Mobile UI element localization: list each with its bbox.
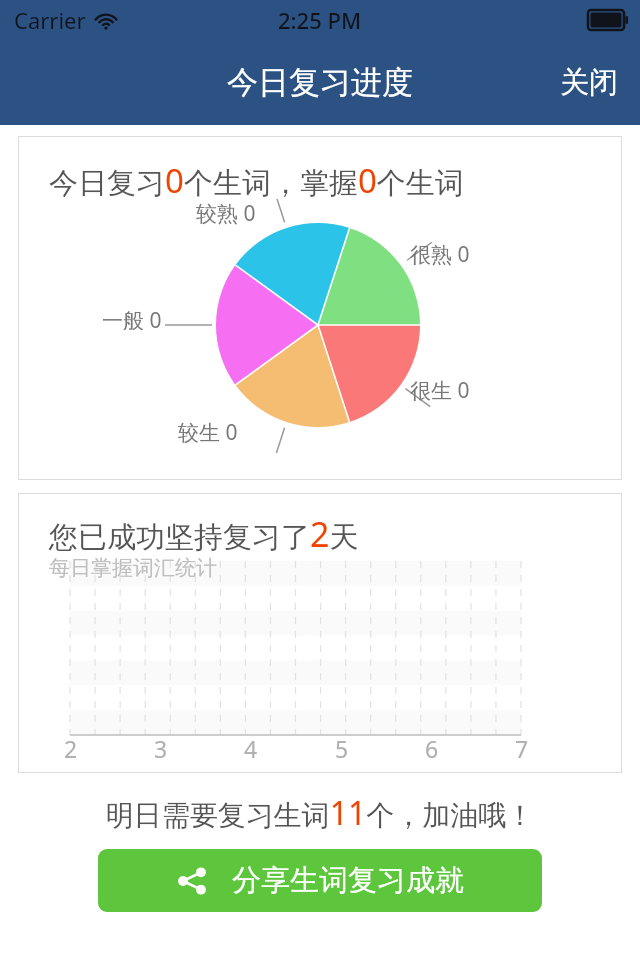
staticText: 很生 0 bbox=[410, 376, 470, 405]
button[interactable]: 您已成功坚持复习了2天 bbox=[18, 493, 622, 773]
staticText: 5 bbox=[335, 733, 349, 764]
staticText: 4 bbox=[244, 733, 258, 764]
staticText: 较生 0 bbox=[178, 418, 238, 447]
staticText: 关闭 bbox=[560, 64, 618, 101]
button[interactable]: Share bbox=[98, 849, 542, 912]
button[interactable]: 今日复习0个生词，掌握0个生词 bbox=[18, 136, 622, 480]
staticText: Carrier bbox=[14, 5, 86, 35]
staticText: 3 bbox=[154, 733, 168, 764]
staticText: 7 bbox=[515, 733, 529, 764]
staticText: 今日复习0个生词，掌握0个生词 bbox=[49, 158, 464, 203]
staticText: 明日需要复习生词11个，加油哦！ bbox=[0, 791, 640, 835]
staticText: 一般 0 bbox=[102, 306, 162, 335]
other: Share bbox=[176, 865, 208, 897]
staticText: 2:25 PM bbox=[278, 5, 362, 35]
staticText: 您已成功坚持复习了2天 bbox=[49, 511, 359, 557]
staticText: 2 bbox=[64, 733, 78, 764]
staticText: 很熟 0 bbox=[410, 240, 470, 269]
staticText: 6 bbox=[425, 733, 439, 764]
staticText: 较熟 0 bbox=[196, 199, 256, 228]
button[interactable]: 关闭 bbox=[538, 56, 640, 109]
staticText: 今日复习进度 bbox=[227, 63, 413, 102]
staticText: 分享生词复习成就 bbox=[232, 862, 464, 899]
staticText: 每日掌握词汇统计 bbox=[49, 555, 217, 581]
